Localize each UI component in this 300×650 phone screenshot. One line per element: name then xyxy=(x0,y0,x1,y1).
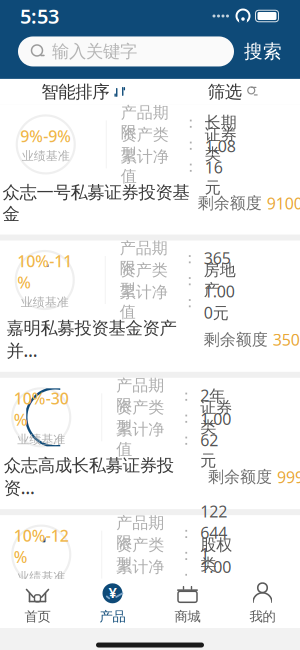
staticText: 资产类型 xyxy=(121,125,169,164)
staticText: 剩余额度 xyxy=(204,330,273,349)
staticText: 累计净值 xyxy=(120,282,168,322)
staticText: 累计净值 xyxy=(121,147,169,186)
button[interactable]: 10%-30% xyxy=(0,378,300,509)
staticText: 房地产 xyxy=(204,260,236,300)
staticText: 3500万元 xyxy=(273,329,300,350)
staticText: 首页 xyxy=(24,608,50,625)
staticText: 1.000元 xyxy=(204,281,235,323)
staticText: 长期 xyxy=(205,113,237,132)
staticText: 股权类 xyxy=(200,535,232,574)
staticText: 1.0062元 xyxy=(200,408,231,470)
staticText: 众志高成长私募证券投资… xyxy=(4,455,174,499)
staticText: 通葡产业并购基金 xyxy=(4,592,140,613)
staticText: ： xyxy=(178,385,194,405)
staticText: 商城 xyxy=(174,608,200,625)
staticText: 智能排序 xyxy=(41,81,109,103)
staticText: 业绩基准 xyxy=(22,149,70,163)
staticText: 嘉明私募投资基金资产并… xyxy=(6,317,176,362)
staticText: ： xyxy=(182,292,198,312)
button[interactable]: 首页 xyxy=(0,576,75,631)
staticText: 我的 xyxy=(249,608,275,625)
button[interactable]: 9%-9% xyxy=(0,105,300,234)
staticText: ： xyxy=(183,157,199,176)
staticText: 业绩基准 xyxy=(21,295,69,310)
button[interactable]: 输入关键字 xyxy=(18,36,234,66)
staticText: 产品期限 xyxy=(116,376,164,415)
button[interactable]: 10%-12% xyxy=(0,515,300,623)
staticText: 业绩基准 xyxy=(17,432,65,447)
staticText: 筛选 xyxy=(208,81,242,103)
staticText: ： xyxy=(183,113,199,132)
staticText: 累计净值 xyxy=(116,420,164,459)
staticText: 业绩基准 xyxy=(17,569,65,584)
staticText: 9100万元 xyxy=(267,193,300,214)
staticText: 众志一号私募证券投资基金 xyxy=(2,182,189,224)
staticText: 证券类 xyxy=(200,398,232,437)
staticText: ： xyxy=(178,545,194,564)
button[interactable]: 10%-11% xyxy=(0,240,300,372)
staticText: 搜索 xyxy=(244,40,282,63)
staticText: ： xyxy=(182,270,198,290)
button[interactable]: 搜索 xyxy=(244,34,282,69)
staticText: ： xyxy=(178,567,194,586)
staticText: 12个月 xyxy=(204,626,238,650)
staticText: 10%-11% xyxy=(17,250,72,293)
staticText: ： xyxy=(182,637,198,650)
staticText: ： xyxy=(178,429,194,449)
staticText: 产品期限 xyxy=(120,627,168,650)
staticText: ： xyxy=(178,407,194,427)
staticText: 产品期限 xyxy=(121,103,169,142)
staticText: 1.00元 xyxy=(200,556,231,597)
button[interactable]: 智能排序 xyxy=(35,76,131,108)
staticText: ： xyxy=(178,523,194,542)
staticText: 剩余额度 xyxy=(198,193,267,213)
staticText: 10%-30% xyxy=(14,388,69,430)
button[interactable]: 我的 xyxy=(225,576,300,631)
staticText: 365 xyxy=(204,247,231,269)
button[interactable]: 8.5%-10% xyxy=(0,629,300,650)
staticText: 产品期限 xyxy=(120,238,168,278)
staticText: 2年 xyxy=(200,385,225,406)
staticText: 1.0816元 xyxy=(205,135,236,197)
staticText: 50000万元 xyxy=(268,592,300,613)
button[interactable]: ¥ xyxy=(75,576,150,631)
staticText: 5:53 xyxy=(20,3,59,29)
staticText: 9999万元 xyxy=(277,466,300,487)
staticText: 资产类型 xyxy=(116,398,164,437)
staticText: 资产类型 xyxy=(116,535,164,574)
staticText: 产品期限 xyxy=(116,513,164,552)
staticText: 累计净值 xyxy=(116,557,164,596)
staticText: ： xyxy=(183,135,199,154)
staticText: 剩余额度 xyxy=(208,467,277,487)
button[interactable]: 商城 xyxy=(150,576,225,631)
staticText: 证券类 xyxy=(205,125,237,164)
staticText: 10%-12% xyxy=(14,525,69,567)
button[interactable]: 筛选 xyxy=(202,76,265,108)
staticText: 剩余额度 xyxy=(199,593,268,613)
staticText: 资产类型 xyxy=(120,260,168,300)
staticText: ¥ xyxy=(108,583,116,602)
staticText: ： xyxy=(182,248,198,268)
staticText: 1226441 xyxy=(200,501,227,564)
staticText: 9%-9% xyxy=(20,125,71,147)
staticText: 输入关键字 xyxy=(52,41,137,62)
staticText: 产品 xyxy=(99,608,125,625)
